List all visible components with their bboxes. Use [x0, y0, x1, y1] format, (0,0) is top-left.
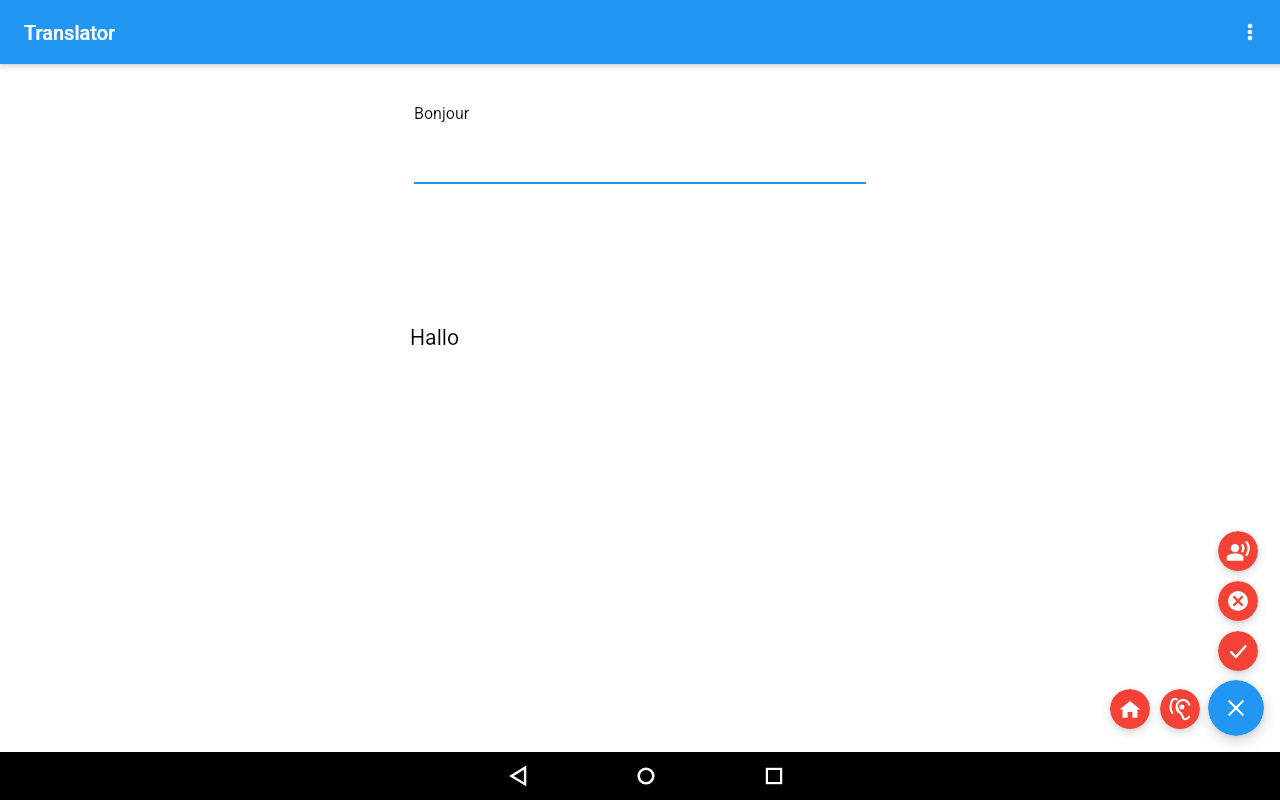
button[interactable]: Home: [622, 752, 670, 800]
button[interactable]: Home: [1110, 689, 1150, 729]
button[interactable]: Cancel: [1218, 581, 1258, 621]
staticText: Hallo: [410, 325, 460, 350]
button[interactable]: Record voice: [1218, 531, 1258, 571]
staticText: Bonjour: [414, 104, 470, 123]
button[interactable]: Close menu: [1208, 680, 1264, 736]
button[interactable]: Recents: [750, 752, 798, 800]
button[interactable]: Hearing: [1160, 689, 1200, 729]
staticText: Translator: [24, 21, 116, 44]
button[interactable]: Back: [494, 752, 542, 800]
button[interactable]: Accept: [1218, 631, 1258, 671]
button[interactable]: More options: [1226, 8, 1274, 56]
